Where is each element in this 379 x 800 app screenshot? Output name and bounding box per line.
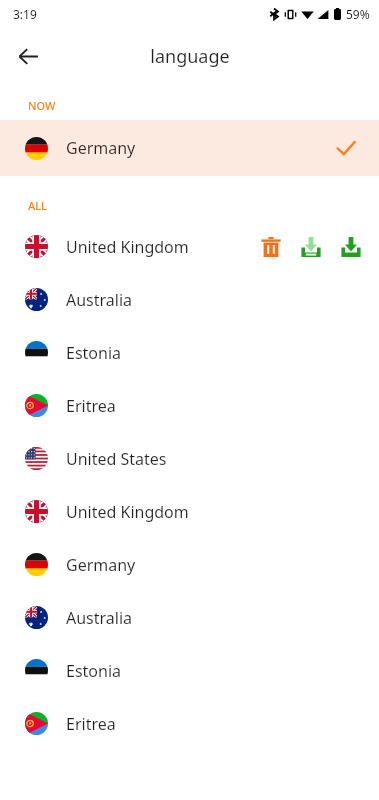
button[interactable]: United Kingdom (0, 220, 379, 273)
staticText: language (150, 44, 230, 69)
staticText: United Kingdom (66, 236, 189, 258)
staticText: Germany (66, 137, 136, 159)
staticText: Germany (66, 554, 136, 576)
button[interactable]: Delete (255, 231, 287, 263)
button[interactable]: Germany (0, 120, 379, 176)
staticText: United States (66, 448, 167, 470)
button[interactable]: Back (6, 34, 50, 78)
staticText: Australia (66, 607, 133, 629)
button[interactable]: Eritrea (0, 379, 379, 432)
staticText: ALL (28, 198, 47, 213)
button[interactable]: Download (335, 231, 367, 263)
staticText: Australia (66, 289, 133, 311)
button[interactable]: United Kingdom (0, 485, 379, 538)
button[interactable]: Germany (0, 538, 379, 591)
staticText: NOW (28, 98, 56, 113)
button[interactable]: Australia (0, 591, 379, 644)
staticText: 59% (346, 6, 370, 22)
staticText: Estonia (66, 342, 122, 364)
button[interactable]: Eritrea (0, 697, 379, 750)
button[interactable]: Australia (0, 273, 379, 326)
button[interactable]: Estonia (0, 326, 379, 379)
staticText: United Kingdom (66, 501, 189, 523)
button[interactable]: Update (295, 231, 327, 263)
button[interactable]: United States (0, 432, 379, 485)
button[interactable]: Estonia (0, 644, 379, 697)
staticText: 3:19 (13, 6, 37, 22)
staticText: Eritrea (66, 395, 116, 417)
staticText: Eritrea (66, 713, 116, 735)
staticText: Estonia (66, 660, 122, 682)
